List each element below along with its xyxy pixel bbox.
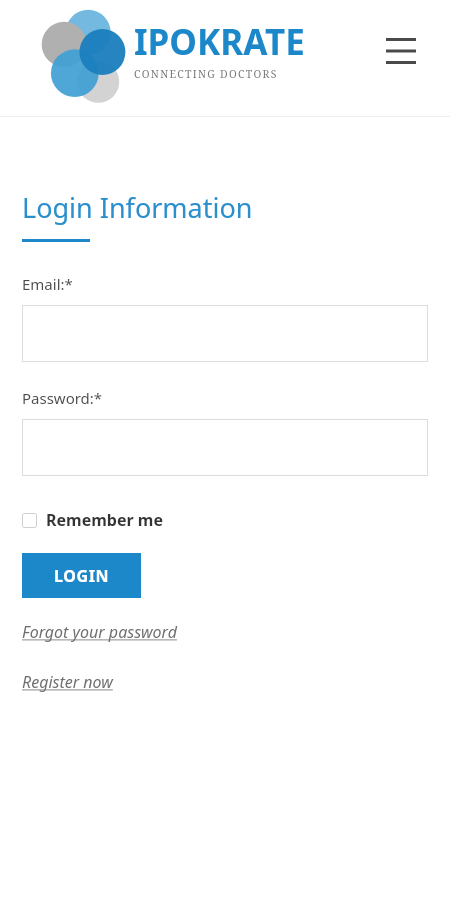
staticText: Email:* [22, 274, 73, 294]
staticText: LOGIN [54, 565, 110, 587]
button[interactable]: LOGIN [22, 553, 141, 598]
button[interactable] [22, 419, 428, 476]
button[interactable]: Forgot your password [22, 621, 177, 643]
staticText: Forgot your password [22, 621, 177, 643]
staticText: Login Information [22, 189, 253, 226]
staticText: Remember me [46, 509, 163, 531]
staticText: CONNECTING DOCTORS [134, 67, 278, 81]
staticText: Register now [22, 671, 113, 693]
button[interactable] [22, 305, 428, 362]
button[interactable]: Open menu [378, 28, 424, 74]
staticText: Password:* [22, 388, 103, 408]
button[interactable]: Register now [22, 671, 113, 693]
staticText: IPOKRATE [134, 18, 305, 66]
button[interactable]: Remember me [22, 509, 163, 531]
